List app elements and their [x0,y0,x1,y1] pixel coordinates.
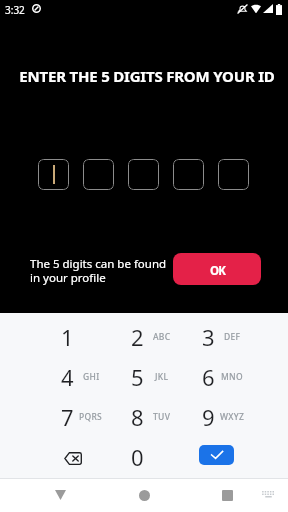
staticText: 7 [61,402,74,432]
staticText: 8 [131,402,144,432]
staticText: The 5 digits can be found in your profil… [30,256,167,286]
staticText: 1 [61,322,74,352]
button[interactable]: 2 [96,317,192,357]
staticText: ABC [153,331,171,343]
button[interactable]: 8 [96,397,192,437]
button[interactable]: 4 [0,357,96,397]
button[interactable]: 9 [192,397,288,437]
staticText: JKL [155,371,169,383]
staticText: ENTER THE 5 DIGITS FROM YOUR ID [3,66,288,86]
staticText: DEF [224,331,241,343]
button[interactable]: Done [192,437,288,477]
button[interactable] [173,159,204,190]
staticText: WXYZ [220,411,245,423]
button[interactable]: 0 [96,437,192,477]
button[interactable] [128,159,159,190]
staticText: OK [210,263,225,279]
button[interactable] [38,159,69,190]
button[interactable]: Home [128,479,160,511]
staticText: 4 [61,362,74,392]
button[interactable] [83,159,114,190]
staticText: 0 [131,442,144,472]
button[interactable]: OK [173,253,261,285]
button[interactable]: 5 [96,357,192,397]
button[interactable]: Backspace [0,437,96,477]
staticText: GHI [83,371,100,383]
button[interactable] [218,159,249,190]
button[interactable]: Switch keyboard [254,482,282,506]
staticText: 9 [202,402,215,432]
button[interactable]: 3 [192,317,288,357]
staticText: MNO [221,371,243,383]
button[interactable]: 1 [0,317,96,357]
staticText: 3 [202,322,215,352]
button[interactable]: 7 [0,397,96,437]
staticText: 3:32 [5,3,25,17]
staticText: 2 [131,322,144,352]
button[interactable]: Back [44,479,76,511]
staticText: 6 [202,362,215,392]
staticText: 5 [131,362,144,392]
button[interactable]: Recents [211,479,243,511]
button[interactable]: 6 [192,357,288,397]
staticText: PQRS [79,411,103,423]
staticText: TUV [153,411,171,423]
